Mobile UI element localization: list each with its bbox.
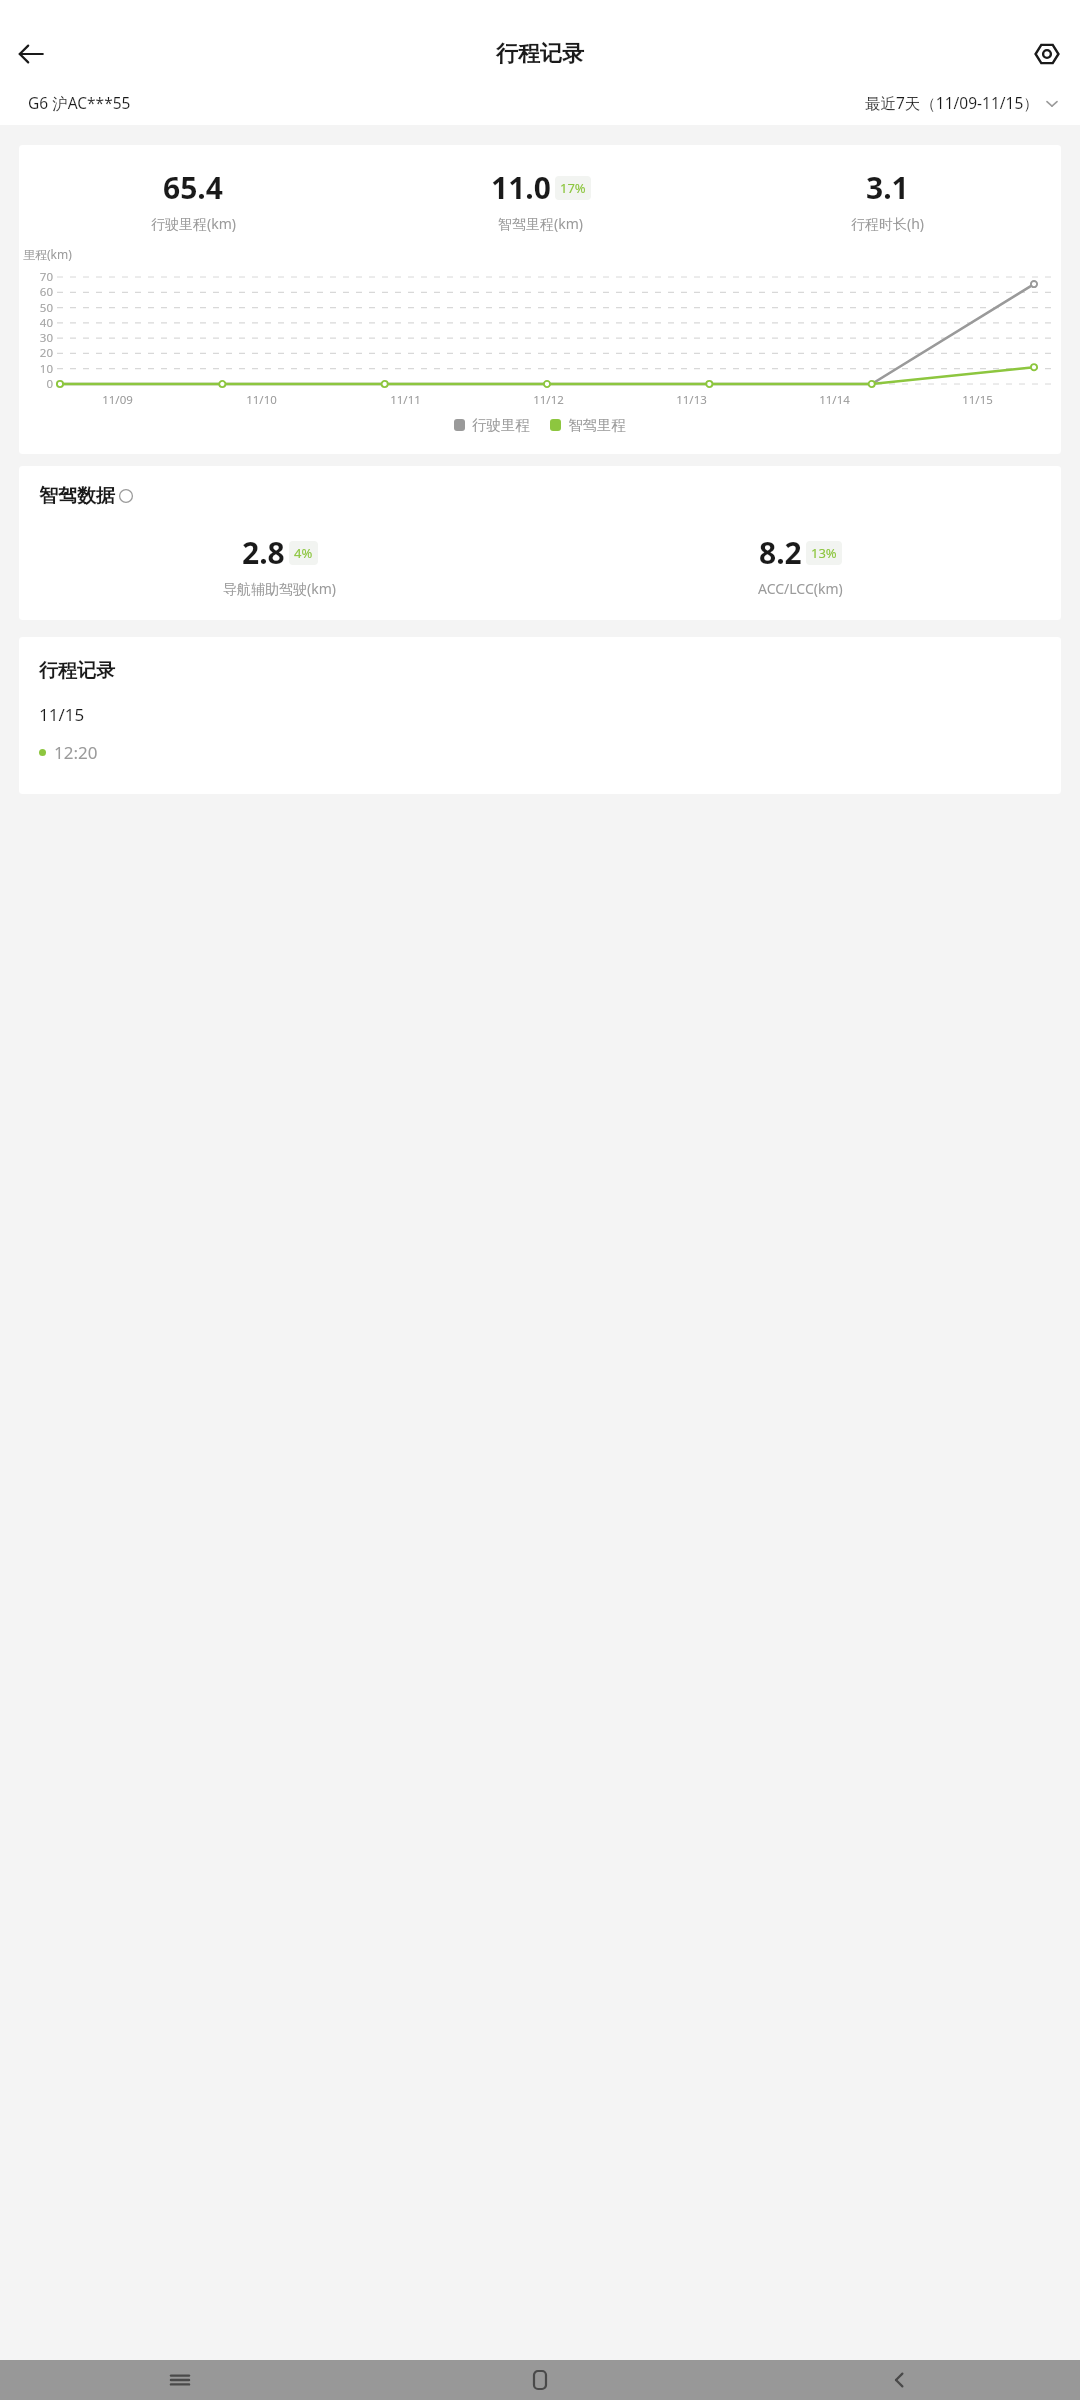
staticText: 11/12	[533, 392, 564, 408]
staticText: 11/09	[102, 392, 133, 408]
button[interactable]: 8.2	[540, 532, 1061, 598]
button[interactable]: 3.1	[714, 167, 1061, 233]
staticText: G6 沪AC***55	[28, 92, 131, 113]
staticText: 13%	[811, 544, 837, 562]
staticText: 17%	[560, 179, 586, 197]
staticText: 11.0	[491, 167, 551, 208]
staticText: 智驾里程	[568, 416, 626, 434]
staticText: 11/11	[390, 392, 421, 408]
staticText: 11/14	[819, 392, 850, 408]
staticText: 行驶里程(km)	[151, 214, 236, 233]
staticText: 行程记录	[496, 40, 584, 68]
staticText: 8.2	[759, 532, 802, 573]
button[interactable]: 智驾里程	[550, 416, 626, 434]
staticText: 2.8	[242, 532, 285, 573]
button[interactable]: Home	[360, 2360, 720, 2400]
staticText: 行程记录	[39, 659, 115, 683]
staticText: 40	[39, 315, 53, 331]
staticText: 行驶里程	[472, 416, 530, 434]
staticText: 3.1	[866, 167, 909, 208]
staticText: 30	[39, 330, 53, 346]
staticText: 智驾里程(km)	[498, 214, 583, 233]
button[interactable]: Back	[8, 31, 54, 77]
button[interactable]: Back	[720, 2360, 1080, 2400]
staticText: 0	[46, 376, 53, 392]
staticText: 11/15	[962, 392, 993, 408]
staticText: 11/10	[246, 392, 277, 408]
button[interactable]: 2.8	[19, 532, 540, 598]
staticText: 行程时长(h)	[851, 214, 925, 233]
button[interactable]: 65.4	[19, 167, 367, 233]
staticText: 11/13	[676, 392, 707, 408]
button[interactable]: 智驾数据	[39, 484, 133, 508]
staticText: ACC/LCC(km)	[758, 579, 843, 598]
button[interactable]: 11.0	[367, 167, 714, 233]
staticText: 4%	[294, 544, 313, 562]
staticText: 65.4	[163, 167, 223, 208]
button[interactable]: 行驶里程	[454, 416, 530, 434]
staticText: 20	[39, 345, 53, 361]
staticText: 12:20	[54, 741, 98, 764]
button[interactable]: 12:20	[19, 741, 1061, 764]
staticText: 50	[39, 300, 53, 316]
staticText: 70	[39, 269, 53, 285]
staticText: 60	[39, 284, 53, 300]
staticText: 11/15	[39, 703, 85, 726]
staticText: 最近7天（11/09-11/15）	[865, 92, 1039, 113]
staticText: 10	[39, 361, 53, 377]
button[interactable]: Recent apps	[0, 2360, 360, 2400]
staticText: 里程(km)	[23, 246, 72, 262]
button[interactable]: Settings	[1024, 31, 1070, 77]
staticText: 智驾数据	[39, 484, 115, 508]
staticText: 导航辅助驾驶(km)	[223, 579, 336, 598]
button[interactable]: 最近7天（11/09-11/15）	[865, 92, 1080, 113]
